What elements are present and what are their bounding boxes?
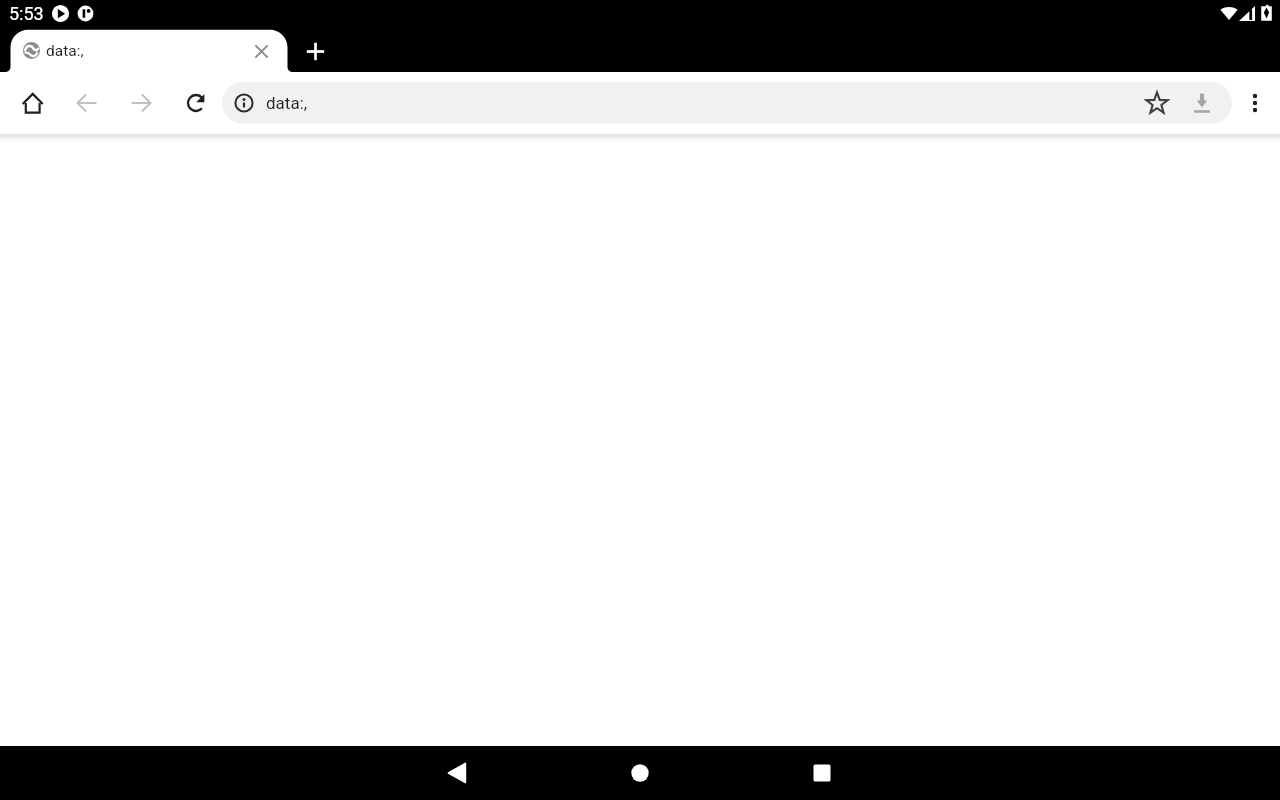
button[interactable]: data:, — [10, 29, 288, 72]
button[interactable]: Home — [620, 753, 660, 793]
button[interactable]: Bookmark — [1139, 85, 1175, 121]
staticText: data:, — [266, 93, 308, 113]
button[interactable]: Reload — [176, 83, 216, 123]
button[interactable]: More options — [1235, 83, 1275, 123]
button[interactable]: Forward — [121, 83, 161, 123]
button[interactable]: New tab — [299, 35, 332, 68]
button[interactable]: Download — [1184, 85, 1220, 121]
button[interactable]: Recent apps — [802, 753, 842, 793]
button[interactable]: Back — [437, 753, 477, 793]
button[interactable]: Home — [12, 83, 52, 123]
button[interactable]: Back — [67, 83, 107, 123]
button[interactable]: data:, — [222, 82, 1232, 124]
button[interactable]: Close tab — [246, 36, 277, 67]
staticText: data:, — [46, 42, 84, 60]
staticText: 5:53 — [9, 3, 44, 24]
